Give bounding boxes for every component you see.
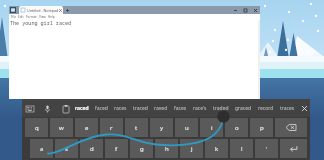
button[interactable]: Backspace bbox=[275, 118, 307, 137]
button[interactable]: graced bbox=[232, 99, 255, 117]
button[interactable]: Help bbox=[47, 14, 56, 20]
staticText: e bbox=[85, 124, 89, 132]
staticText: traced bbox=[133, 105, 148, 112]
button[interactable]: k bbox=[205, 139, 228, 158]
staticText: y bbox=[160, 124, 164, 132]
button[interactable]: Clipboard bbox=[60, 103, 71, 114]
button[interactable]: raved bbox=[151, 99, 171, 117]
button[interactable]: f bbox=[105, 139, 128, 158]
staticText: Edit bbox=[18, 15, 24, 19]
button[interactable]: Edit bbox=[17, 14, 25, 20]
staticText: record bbox=[258, 105, 274, 112]
button[interactable]: w bbox=[50, 118, 73, 137]
staticText: s bbox=[65, 145, 68, 153]
button[interactable]: h bbox=[155, 139, 178, 158]
button[interactable]: r bbox=[100, 118, 123, 137]
staticText: o bbox=[235, 124, 239, 132]
staticText: View bbox=[39, 15, 46, 19]
button[interactable]: Keyboard settings bbox=[24, 103, 35, 114]
staticText: raced bbox=[75, 105, 89, 112]
button[interactable]: d bbox=[80, 139, 103, 158]
button[interactable]: s bbox=[55, 139, 78, 158]
button[interactable]: Close keyboard bbox=[298, 99, 310, 117]
staticText: traces bbox=[280, 105, 295, 112]
staticText: a bbox=[40, 145, 44, 153]
button[interactable]: traded bbox=[210, 99, 232, 117]
button[interactable]: races bbox=[111, 99, 130, 117]
button[interactable]: File bbox=[10, 14, 17, 20]
button[interactable]: j bbox=[180, 139, 203, 158]
staticText: Help bbox=[48, 15, 55, 19]
button[interactable]: e bbox=[75, 118, 98, 137]
staticText: p bbox=[260, 124, 264, 132]
button[interactable]: Enter bbox=[280, 139, 307, 158]
staticText: h bbox=[165, 145, 169, 153]
button[interactable]: y bbox=[150, 118, 173, 137]
staticText: d bbox=[90, 145, 94, 153]
button[interactable]: raced bbox=[72, 99, 92, 117]
button[interactable]: faced bbox=[92, 99, 111, 117]
button[interactable]: View bbox=[38, 14, 47, 20]
staticText: race's bbox=[193, 105, 207, 112]
button[interactable]: o bbox=[225, 118, 248, 137]
staticText: File bbox=[11, 15, 16, 19]
staticText: q bbox=[35, 124, 39, 132]
button[interactable]: Maximize bbox=[240, 6, 250, 14]
staticText: Untitled - Notepad bbox=[27, 8, 59, 13]
button[interactable]: Format bbox=[25, 14, 38, 20]
button[interactable]: Close bbox=[250, 6, 260, 14]
staticText: t bbox=[135, 124, 138, 132]
staticText: w bbox=[59, 124, 64, 132]
button[interactable]: l bbox=[230, 139, 253, 158]
button[interactable]: record bbox=[255, 99, 277, 117]
button[interactable]: Minimize bbox=[230, 6, 240, 14]
button[interactable]: u bbox=[175, 118, 198, 137]
staticText: races bbox=[114, 105, 127, 112]
button[interactable]: faces bbox=[171, 99, 190, 117]
button[interactable]: a bbox=[30, 139, 53, 158]
staticText: graced bbox=[235, 105, 252, 112]
button[interactable]: traced bbox=[130, 99, 151, 117]
button[interactable]: New tab bbox=[64, 7, 70, 13]
staticText: g bbox=[140, 145, 144, 153]
staticText: i bbox=[211, 124, 213, 132]
staticText: r bbox=[110, 124, 113, 132]
staticText: j bbox=[191, 145, 193, 153]
button[interactable]: g bbox=[130, 139, 153, 158]
button[interactable]: Untitled - Notepad bbox=[19, 6, 63, 14]
button[interactable]: traces bbox=[277, 99, 298, 117]
staticText: k bbox=[215, 145, 219, 153]
button[interactable]: i bbox=[200, 118, 223, 137]
staticText: faced bbox=[95, 105, 108, 112]
button[interactable]: p bbox=[250, 118, 273, 137]
button[interactable]: race's bbox=[190, 99, 210, 117]
staticText: The young girl raced bbox=[10, 20, 72, 27]
staticText: traded bbox=[213, 105, 229, 112]
staticText: f bbox=[115, 145, 118, 153]
button[interactable]: Voice typing bbox=[42, 103, 53, 114]
staticText: faces bbox=[174, 105, 187, 112]
button[interactable]: t bbox=[125, 118, 148, 137]
button[interactable]: ' bbox=[255, 139, 278, 158]
button[interactable]: q bbox=[25, 118, 48, 137]
staticText: Format bbox=[26, 15, 37, 19]
staticText: raved bbox=[154, 105, 168, 112]
staticText: u bbox=[185, 124, 189, 132]
staticText: l bbox=[241, 145, 243, 153]
staticText: ' bbox=[266, 145, 268, 153]
